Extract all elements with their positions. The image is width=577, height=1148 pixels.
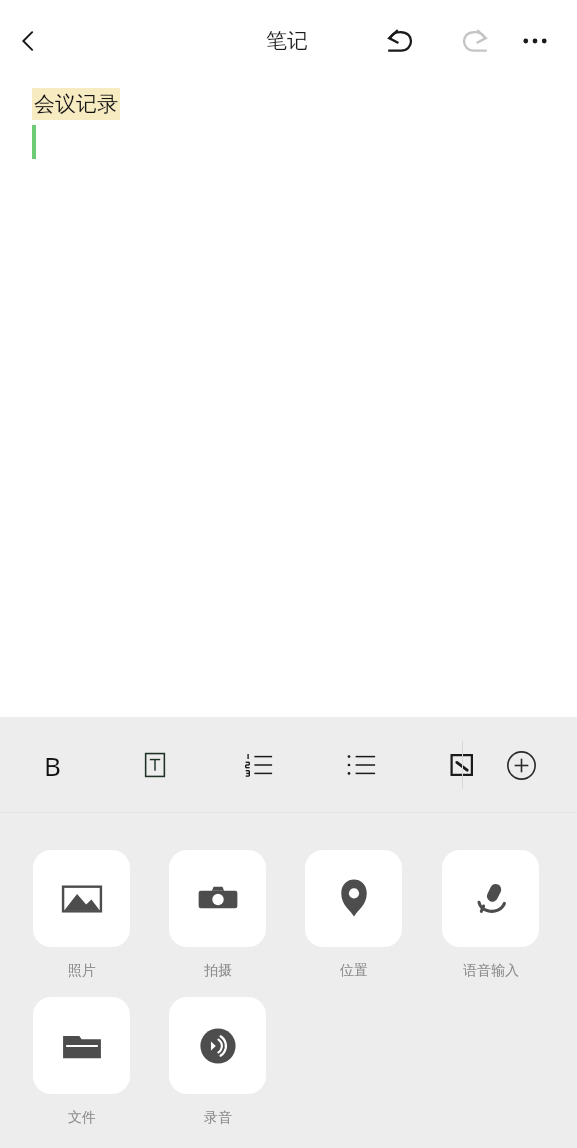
button[interactable]: 位置 (305, 850, 402, 980)
staticText: 会议记录 (34, 91, 118, 117)
staticText: 照片 (68, 962, 96, 980)
staticText: 笔记 (266, 28, 308, 54)
button[interactable]: 录音 (169, 997, 266, 1127)
staticText: 位置 (340, 962, 368, 980)
button[interactable]: Redo (448, 15, 500, 67)
button[interactable]: 照片 (33, 850, 130, 980)
button[interactable]: Text style (129, 739, 181, 791)
button[interactable]: 语音输入 (442, 850, 539, 980)
button[interactable]: More options (509, 15, 561, 67)
button[interactable]: Bold (26, 739, 78, 791)
button[interactable]: 拍摄 (169, 850, 266, 980)
button[interactable]: Add attachment (495, 739, 547, 791)
staticText: 语音输入 (463, 962, 519, 980)
staticText: B (44, 748, 61, 783)
staticText: 拍摄 (204, 962, 232, 980)
button[interactable]: Numbered list (232, 739, 284, 791)
button[interactable]: Bulleted list (335, 739, 387, 791)
button[interactable]: Undo (375, 15, 427, 67)
button[interactable]: Back (4, 17, 52, 65)
button[interactable]: 文件 (33, 997, 130, 1127)
button[interactable]: Checklist (436, 739, 488, 791)
staticText: 文件 (68, 1109, 96, 1127)
staticText: 录音 (204, 1109, 232, 1127)
